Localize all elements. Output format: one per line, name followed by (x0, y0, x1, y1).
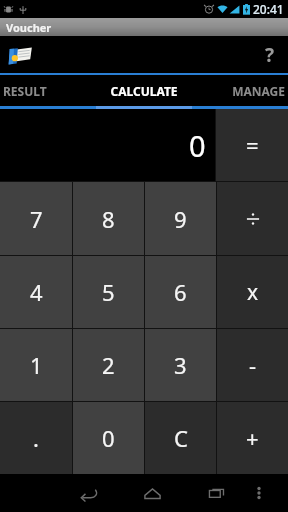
button[interactable]: 5 (73, 256, 144, 328)
staticText: + (246, 423, 259, 453)
staticText: CALCULATE (99, 83, 189, 99)
button[interactable]: 8 (73, 182, 144, 255)
staticText: . (33, 423, 39, 453)
staticText: 0 (102, 423, 115, 453)
button[interactable]: - (217, 329, 288, 401)
staticText: 7 (30, 204, 43, 234)
button[interactable]: More options (238, 474, 279, 512)
staticText: 20:41 (253, 1, 284, 17)
staticText: 5 (102, 277, 115, 307)
button[interactable]: Voucher app icon (5, 40, 35, 70)
button[interactable]: Back (67, 474, 110, 512)
staticText: = (246, 130, 259, 160)
staticText: C (174, 423, 188, 453)
button[interactable]: 1 (0, 329, 72, 401)
button[interactable]: Help (252, 36, 288, 73)
button[interactable]: + (217, 402, 288, 474)
button[interactable]: x (217, 256, 288, 328)
button[interactable] (217, 182, 288, 255)
staticText: - (249, 350, 257, 380)
button[interactable]: Home (131, 474, 174, 512)
button[interactable]: CALCULATE (96, 75, 192, 106)
staticText: 2 (102, 350, 115, 380)
button[interactable]: 9 (145, 182, 216, 255)
staticText: 9 (174, 204, 187, 234)
staticText: RESULT (3, 83, 93, 99)
staticText: 1 (30, 350, 43, 380)
button[interactable]: 4 (0, 256, 72, 328)
staticText: MANAGE (195, 83, 285, 99)
staticText: x (247, 278, 259, 307)
button[interactable]: RESULT (0, 75, 96, 106)
button[interactable]: . (0, 402, 72, 474)
button[interactable]: MANAGE (192, 75, 288, 106)
button[interactable]: Recent apps (195, 474, 238, 512)
staticText: Voucher (6, 20, 52, 35)
button[interactable]: 6 (145, 256, 216, 328)
staticText: 8 (102, 204, 115, 234)
button[interactable]: 7 (0, 182, 72, 255)
staticText: ? (265, 42, 275, 68)
button[interactable]: 3 (145, 329, 216, 401)
staticText: 3 (174, 350, 187, 380)
button[interactable]: = (216, 109, 288, 181)
button[interactable]: 2 (73, 329, 144, 401)
staticText: 4 (30, 277, 43, 307)
button[interactable]: 0 (73, 402, 144, 474)
staticText: 0 (189, 126, 206, 165)
staticText: 6 (174, 277, 187, 307)
button[interactable]: C (145, 402, 216, 474)
